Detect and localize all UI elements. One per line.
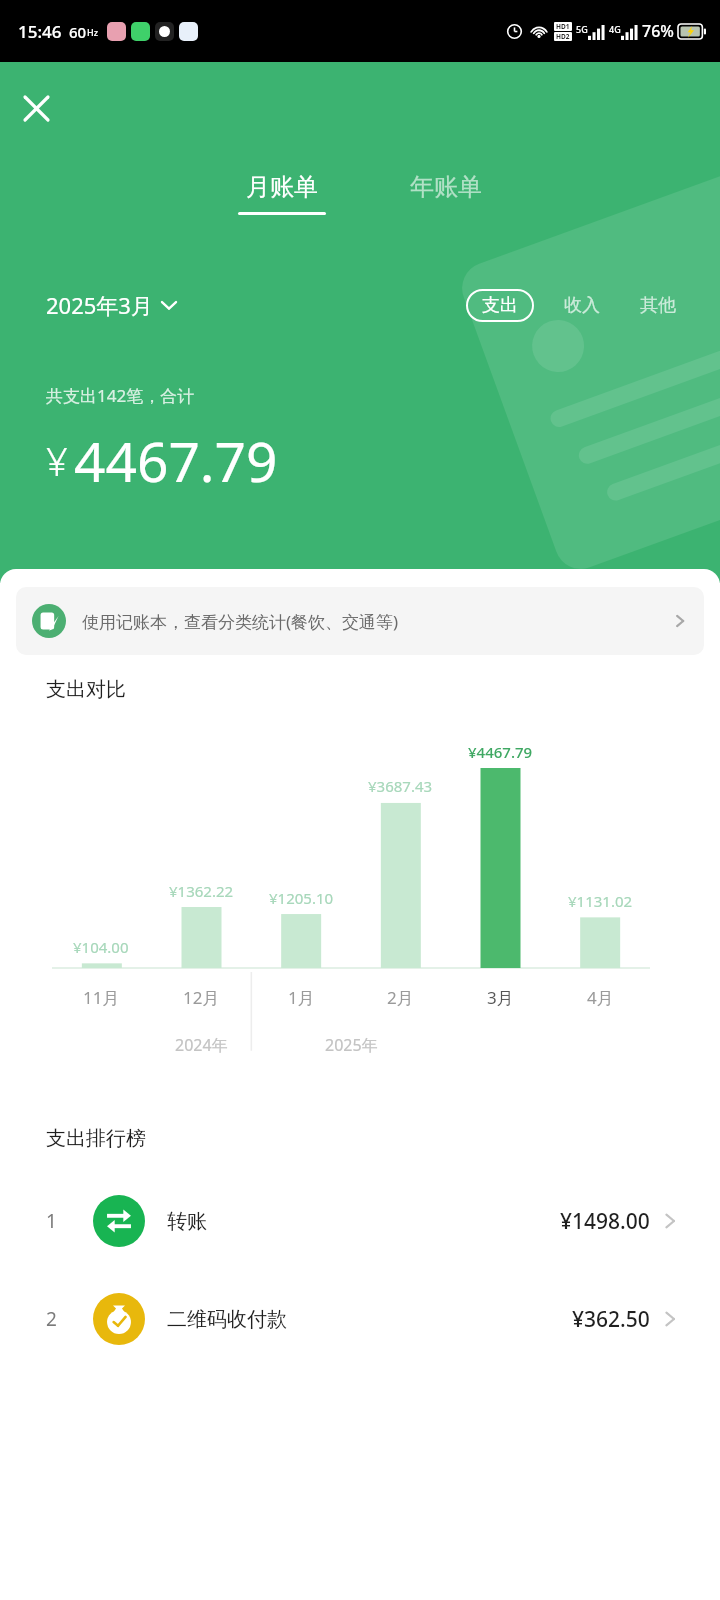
staticText: ¥4467.79: [468, 742, 533, 762]
staticText: 11月: [83, 986, 120, 1009]
staticText: 年账单: [410, 172, 482, 202]
staticText: 4月: [587, 986, 614, 1009]
staticText: 支出: [482, 294, 518, 317]
staticText: 其他: [640, 294, 676, 317]
staticText: 76%: [642, 20, 674, 42]
staticText: 4467.79: [74, 423, 278, 498]
staticText: 收入: [564, 294, 600, 317]
staticText: ¥3687.43: [368, 776, 433, 796]
staticText: ¥1362.22: [169, 881, 234, 901]
staticText: 2024年: [175, 1034, 228, 1056]
button[interactable]: 收入: [560, 288, 604, 323]
staticText: 2月: [387, 986, 414, 1009]
staticText: ¥1498.00: [560, 1207, 650, 1236]
staticText: 共支出142笔，合计: [46, 384, 195, 407]
staticText: 1月: [288, 986, 315, 1009]
button[interactable]: 其他: [636, 288, 680, 323]
button[interactable]: 年账单: [396, 168, 496, 206]
button[interactable]: 1: [0, 1191, 720, 1251]
staticText: HD1: [556, 22, 570, 31]
staticText: 支出排行榜: [46, 1126, 146, 1151]
staticText: ¥1131.02: [568, 891, 633, 911]
staticText: 2025年: [325, 1034, 378, 1056]
staticText: 月账单: [246, 172, 318, 202]
staticText: 5G: [576, 23, 588, 35]
button[interactable]: 2025年3月: [46, 284, 177, 326]
staticText: 12月: [183, 986, 220, 1009]
staticText: 1: [46, 1208, 57, 1234]
staticText: 二维码收付款: [167, 1307, 287, 1332]
staticText: 3月: [487, 986, 514, 1009]
staticText: 15:46: [18, 20, 62, 43]
button[interactable]: 使用记账本，查看分类统计(餐饮、交通等): [16, 587, 704, 655]
button[interactable]: 月账单: [224, 168, 340, 219]
staticText: ¥362.50: [572, 1305, 650, 1334]
button[interactable]: 2: [0, 1289, 720, 1349]
staticText: 4G: [609, 23, 621, 35]
staticText: ¥: [46, 435, 68, 487]
staticText: 转账: [167, 1209, 207, 1234]
staticText: 使用记账本，查看分类统计(餐饮、交通等): [82, 610, 399, 633]
staticText: 60: [69, 22, 87, 42]
staticText: ¥1205.10: [269, 888, 334, 908]
button[interactable]: Close: [10, 82, 62, 134]
staticText: ¥104.00: [73, 937, 129, 957]
staticText: 支出对比: [46, 677, 126, 702]
staticText: Hz: [87, 26, 99, 38]
staticText: 2: [46, 1306, 57, 1332]
staticText: 2025年3月: [46, 290, 153, 320]
staticText: HD2: [556, 32, 570, 41]
button[interactable]: 支出: [466, 289, 534, 322]
